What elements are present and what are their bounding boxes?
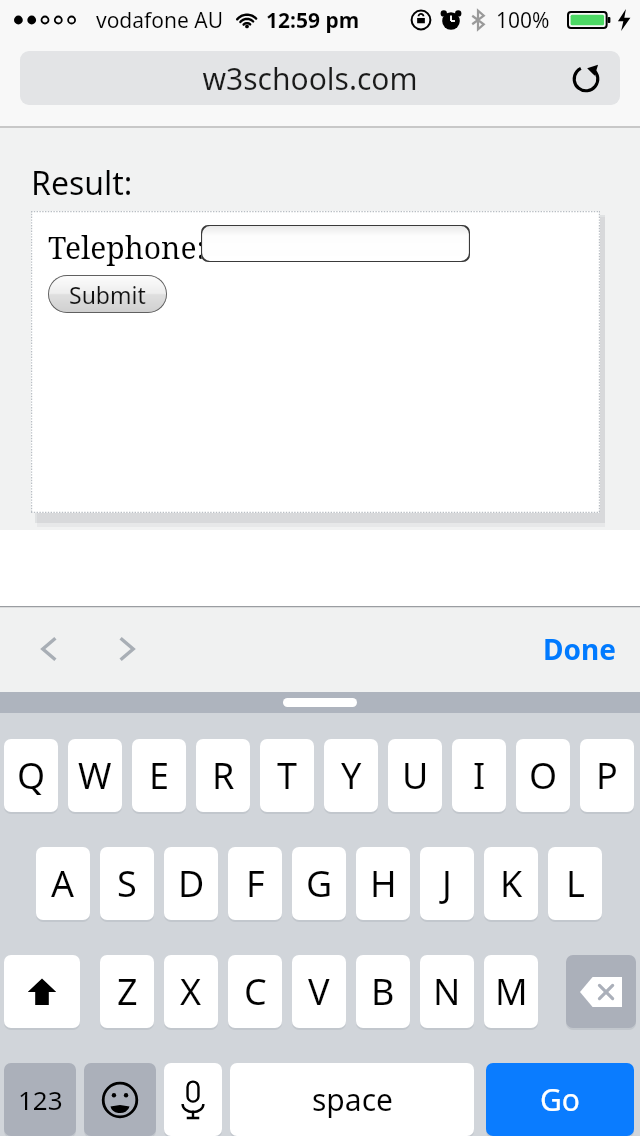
button[interactable]: space xyxy=(230,1063,474,1136)
button[interactable]: K xyxy=(484,847,538,920)
staticText: 123 xyxy=(18,1082,63,1117)
staticText: Q xyxy=(17,751,46,800)
button[interactable]: S xyxy=(100,847,154,920)
button[interactable]: B xyxy=(356,955,410,1028)
button[interactable]: D xyxy=(164,847,218,920)
button[interactable]: w3schools.com xyxy=(20,51,620,105)
staticText: N xyxy=(433,967,461,1016)
button[interactable]: U xyxy=(388,739,442,812)
staticText: U xyxy=(402,751,429,800)
staticText: H xyxy=(370,859,397,908)
staticText: V xyxy=(308,967,330,1016)
button[interactable]: Reload xyxy=(564,56,608,100)
button[interactable]: C xyxy=(228,955,282,1028)
button[interactable]: Done xyxy=(543,630,616,668)
staticText: 12:59 pm xyxy=(266,6,360,35)
staticText: D xyxy=(178,859,205,908)
staticText: A xyxy=(51,859,75,908)
button[interactable]: T xyxy=(260,739,314,812)
button[interactable]: Next field xyxy=(98,621,154,677)
button[interactable]: F xyxy=(228,847,282,920)
button[interactable]: Emoji xyxy=(84,1063,156,1136)
staticText: G xyxy=(306,859,333,908)
staticText: M xyxy=(495,967,528,1016)
staticText: vodafone AU xyxy=(96,6,224,35)
button[interactable]: Dictation xyxy=(164,1063,222,1136)
button[interactable]: Shift xyxy=(4,955,80,1028)
button[interactable] xyxy=(283,698,357,707)
staticText: S xyxy=(117,859,137,908)
staticText: L xyxy=(566,859,585,908)
staticText: Result: xyxy=(31,161,133,205)
button[interactable]: 123 xyxy=(4,1063,76,1136)
staticText: Go xyxy=(540,1079,580,1120)
button[interactable] xyxy=(201,225,470,262)
button[interactable]: Previous field xyxy=(22,621,78,677)
staticText: E xyxy=(149,751,170,800)
staticText: W xyxy=(78,751,112,800)
button[interactable]: A xyxy=(36,847,90,920)
staticText: Y xyxy=(341,751,362,800)
staticText: space xyxy=(312,1079,393,1120)
staticText: J xyxy=(442,859,452,908)
button[interactable]: H xyxy=(356,847,410,920)
button[interactable]: Go xyxy=(486,1063,634,1136)
button[interactable]: G xyxy=(292,847,346,920)
button[interactable]: E xyxy=(132,739,186,812)
button[interactable]: Q xyxy=(4,739,58,812)
staticText: w3schools.com xyxy=(202,58,418,99)
staticText: I xyxy=(473,751,486,800)
button[interactable]: N xyxy=(420,955,474,1028)
staticText: P xyxy=(596,751,618,800)
button[interactable]: Y xyxy=(324,739,378,812)
staticText: Z xyxy=(117,967,138,1016)
staticText: 100% xyxy=(496,6,550,35)
button[interactable]: L xyxy=(548,847,602,920)
button[interactable]: Backspace xyxy=(566,955,636,1028)
button[interactable]: Submit xyxy=(48,275,167,313)
staticText: Done xyxy=(543,630,616,668)
button[interactable]: V xyxy=(292,955,346,1028)
staticText: O xyxy=(529,751,558,800)
button[interactable]: R xyxy=(196,739,250,812)
staticText: B xyxy=(371,967,395,1016)
button[interactable]: P xyxy=(580,739,634,812)
button[interactable]: W xyxy=(68,739,122,812)
button[interactable]: Z xyxy=(100,955,154,1028)
staticText: Submit xyxy=(69,279,146,310)
staticText: Telephone: xyxy=(48,227,206,268)
button[interactable]: O xyxy=(516,739,570,812)
button[interactable]: M xyxy=(484,955,538,1028)
button[interactable]: I xyxy=(452,739,506,812)
staticText: X xyxy=(180,967,202,1016)
staticText: C xyxy=(244,967,267,1016)
staticText: F xyxy=(246,859,265,908)
staticText: R xyxy=(212,751,235,800)
button[interactable]: X xyxy=(164,955,218,1028)
staticText: T xyxy=(277,751,298,800)
button[interactable]: J xyxy=(420,847,474,920)
staticText: K xyxy=(500,859,523,908)
